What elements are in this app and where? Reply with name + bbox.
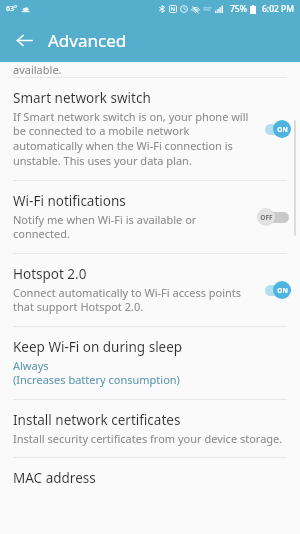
- button[interactable]: Smart network switch: [0, 78, 300, 180]
- staticText: Always (Increases battery consumption): [13, 358, 180, 388]
- staticText: available.: [13, 62, 62, 77]
- staticText: Install security certificates from your …: [13, 431, 283, 446]
- button[interactable]: Wi-Fi notifications: [0, 181, 300, 253]
- staticText: Keep Wi-Fi on during sleep: [13, 338, 183, 356]
- staticText: 6:02 PM: [262, 3, 295, 15]
- staticText: OFF: [260, 213, 273, 222]
- button[interactable]: MAC address: [0, 458, 300, 515]
- staticText: If Smart network switch is on, your phon…: [13, 109, 249, 169]
- staticText: Connect automatically to Wi-Fi access po…: [13, 285, 249, 315]
- staticText: Notify me when Wi-Fi is available or con…: [13, 212, 249, 242]
- button[interactable]: Switch on: [257, 280, 291, 300]
- staticText: 75%: [230, 3, 247, 15]
- staticText: Hotspot 2.0: [13, 265, 87, 283]
- staticText: MAC address: [13, 469, 96, 487]
- staticText: ON: [277, 286, 288, 295]
- button[interactable]: Install network certificates: [0, 400, 300, 457]
- button[interactable]: Keep Wi-Fi on during sleep: [0, 327, 300, 399]
- staticText: 63°: [6, 4, 17, 14]
- button[interactable]: Switch off: [257, 207, 291, 227]
- staticText: Advanced: [48, 29, 127, 52]
- staticText: Wi-Fi notifications: [13, 192, 126, 210]
- staticText: Install network certificates: [13, 411, 181, 429]
- button[interactable]: Switch on: [257, 119, 291, 139]
- button[interactable]: Back: [7, 23, 41, 57]
- button[interactable]: Hotspot 2.0: [0, 254, 300, 326]
- staticText: ON: [277, 125, 288, 134]
- staticText: Smart network switch: [13, 89, 151, 107]
